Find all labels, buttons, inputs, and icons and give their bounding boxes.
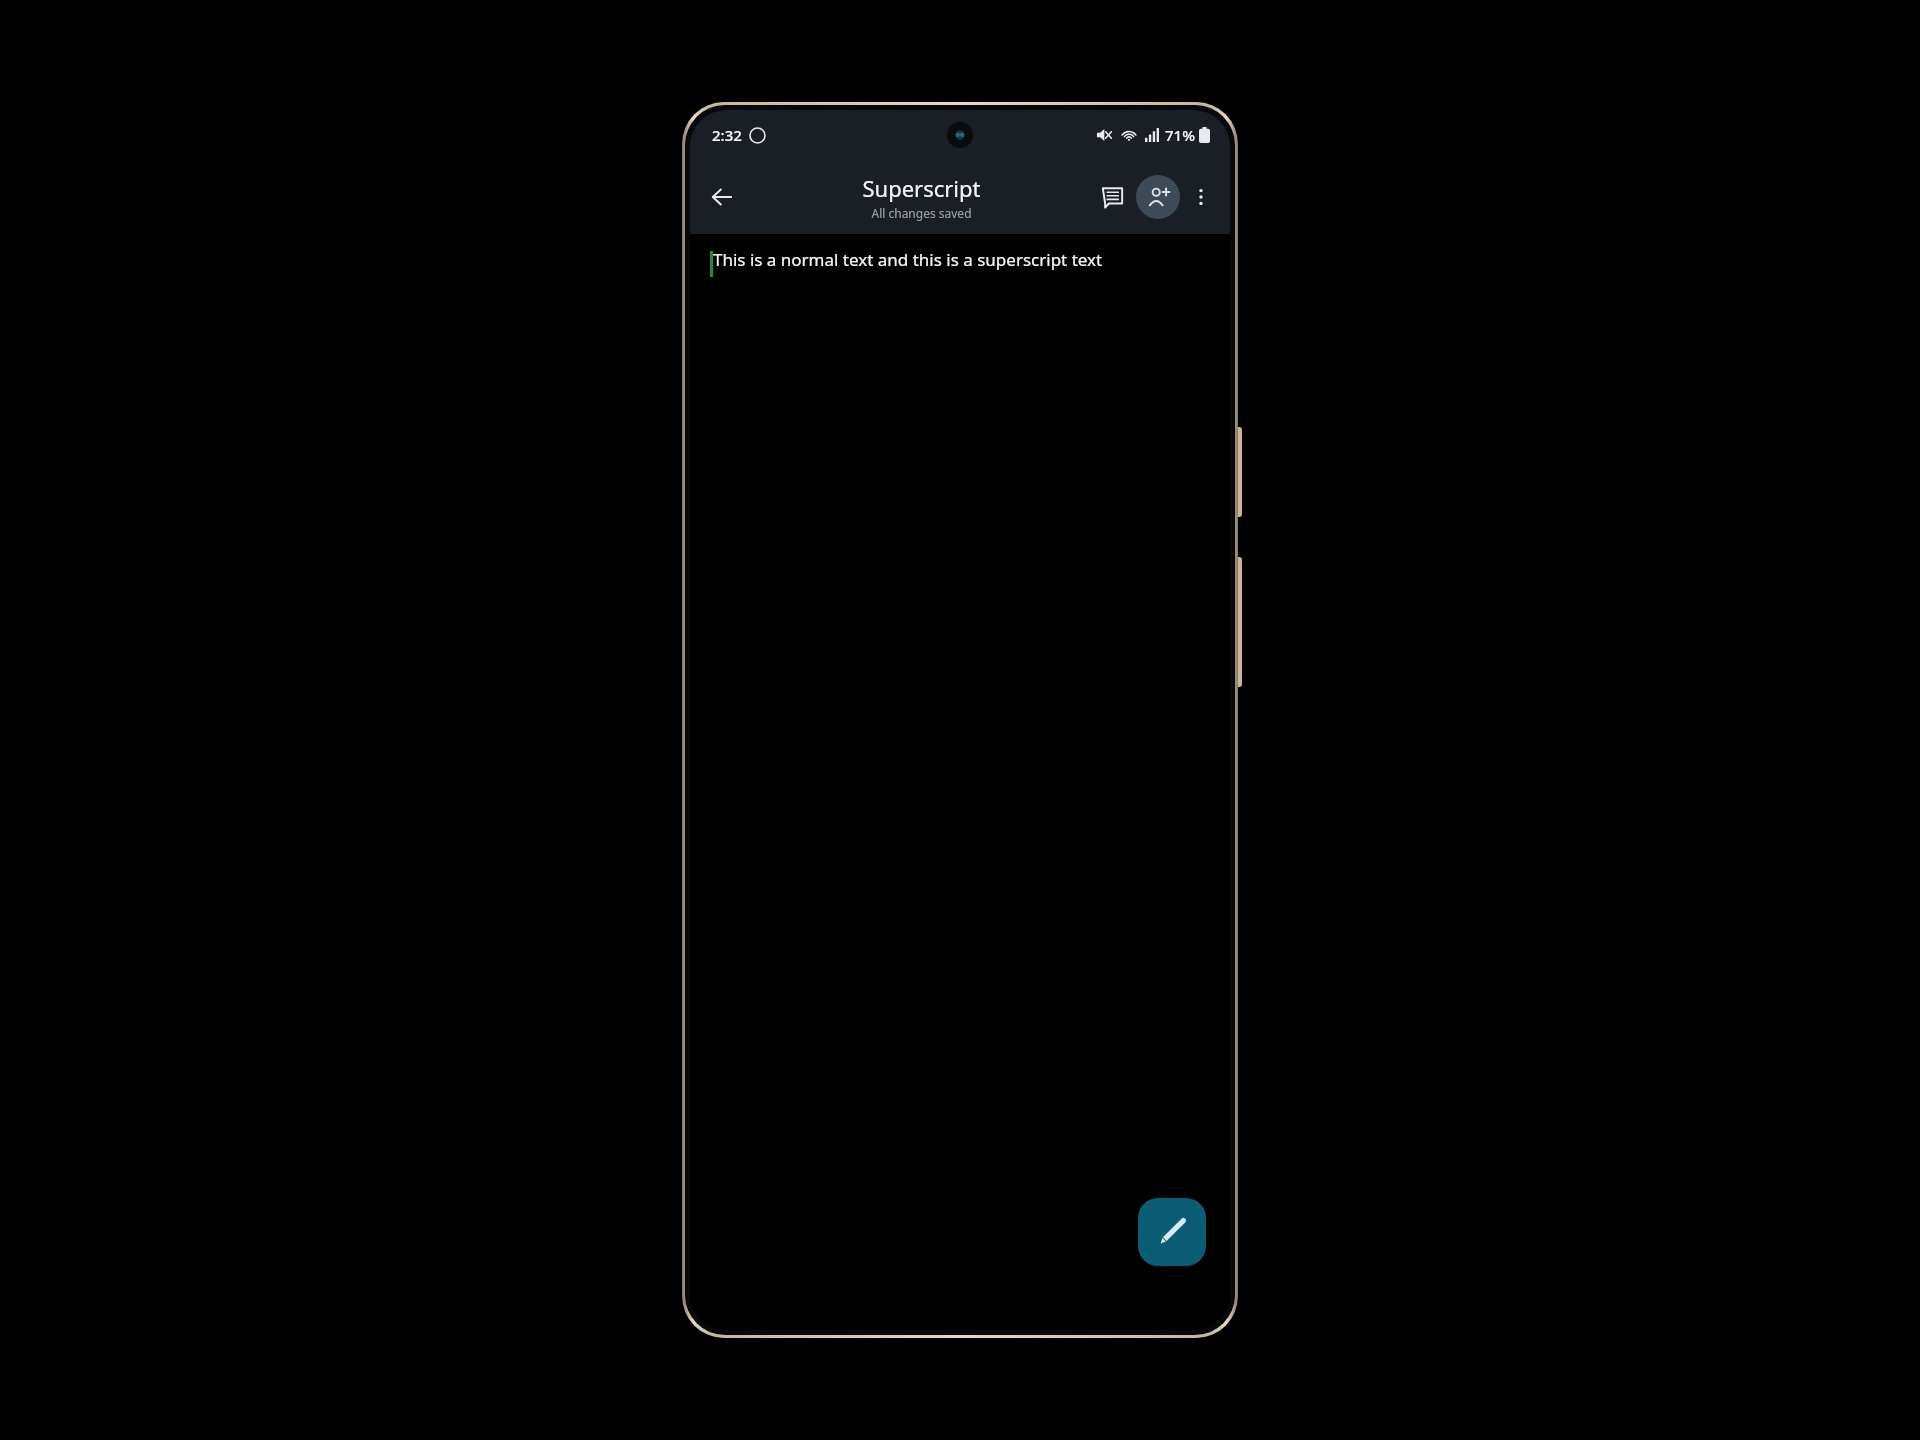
button[interactable]: Back <box>698 173 746 221</box>
staticText: This is a normal text and this is a supe… <box>713 248 1103 271</box>
button[interactable]: More options <box>1180 176 1222 218</box>
button[interactable]: Comments <box>1090 175 1134 219</box>
staticText: All changes saved <box>871 205 972 221</box>
button[interactable]: Superscript <box>752 173 1090 221</box>
button[interactable]: Share <box>1136 175 1180 219</box>
staticText: Superscript <box>862 173 981 203</box>
staticText: 2:32 <box>712 125 742 145</box>
button[interactable]: Edit <box>1138 1198 1206 1266</box>
staticText: 71% <box>1165 125 1195 145</box>
